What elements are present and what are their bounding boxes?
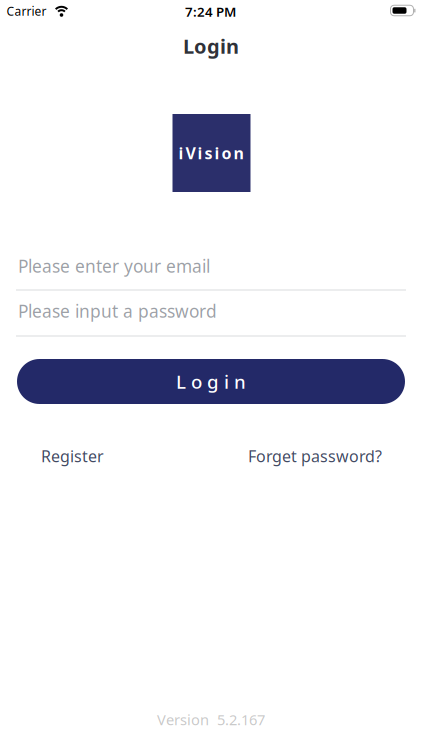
staticText: Carrier [6,3,46,19]
staticText: L o g i n [176,369,246,394]
staticText: Login [183,33,239,59]
staticText: 7:24 PM [185,3,236,20]
button[interactable]: Please enter your email [0,238,422,298]
button[interactable]: Register [41,438,153,474]
staticText: Forget password? [248,445,382,467]
staticText: Please input a password [18,299,217,322]
button[interactable]: Please input a password [0,284,422,344]
staticText: Please enter your email [18,254,210,277]
staticText: Version 5.2.167 [157,710,265,729]
staticText: Register [41,445,104,467]
staticText: i V i s i o n [178,142,243,164]
button[interactable]: L o g i n [17,359,405,404]
button[interactable]: Forget password? [222,438,382,474]
